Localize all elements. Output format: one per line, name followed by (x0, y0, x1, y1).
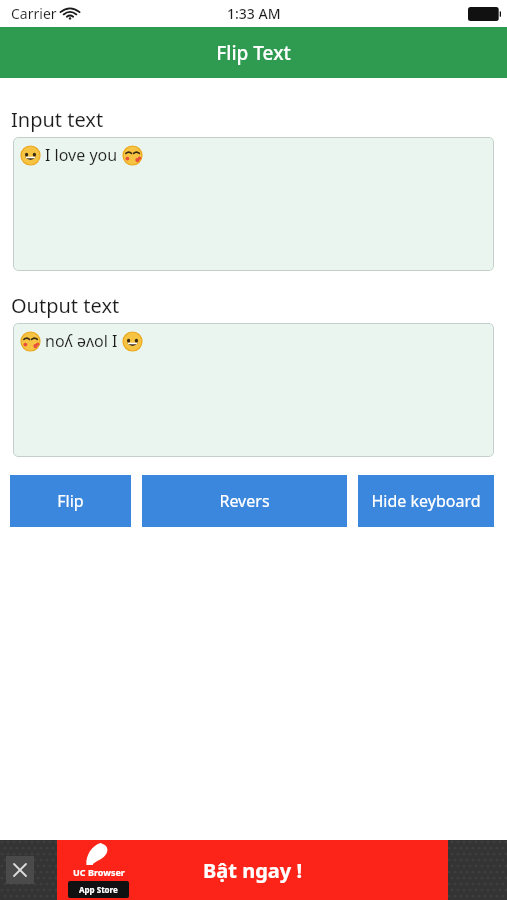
button[interactable]: noʎ ǝʌol I (13, 323, 494, 457)
staticText: 1:33 AM (227, 4, 281, 23)
button[interactable]: Flip (10, 475, 131, 527)
staticText: noʎ ǝʌol I (45, 330, 118, 352)
staticText: Revers (219, 490, 270, 512)
button[interactable]: Hide keyboard (358, 475, 494, 527)
staticText: Flip Text (216, 40, 291, 66)
staticText: Carrier (11, 4, 57, 23)
staticText: Input text (11, 106, 104, 133)
staticText: Hide keyboard (371, 490, 481, 512)
staticText: App Store (79, 884, 118, 895)
button[interactable]: Close ad (6, 856, 34, 884)
staticText: UC Browser (73, 866, 125, 878)
button[interactable]: Revers (142, 475, 347, 527)
staticText: Output text (11, 292, 120, 319)
button[interactable]: I love you (13, 137, 494, 271)
staticText: Flip (57, 490, 84, 512)
staticText: I love you (45, 144, 118, 166)
staticText: Bật ngay ! (203, 857, 303, 884)
button[interactable]: UC Browser (57, 840, 448, 900)
